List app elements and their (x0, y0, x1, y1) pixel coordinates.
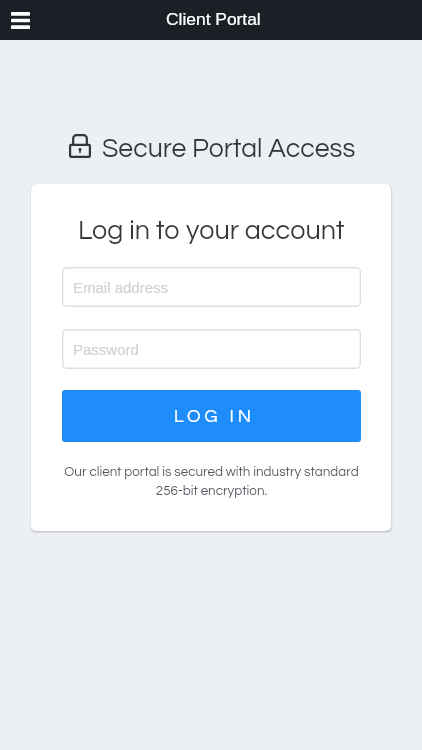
staticText: Client Portal (166, 9, 261, 28)
staticText: Secure Portal Access (102, 135, 356, 162)
staticText: Password (73, 341, 139, 358)
staticText: Email address (73, 279, 169, 296)
staticText: LOG IN (174, 407, 255, 426)
staticText: Log in to your account (78, 217, 345, 245)
button[interactable]: Email address (62, 267, 361, 307)
button[interactable]: Open navigation menu (0, 0, 40, 40)
button[interactable]: LOG IN (62, 390, 361, 442)
staticText: Our client portal is secured with indust… (62, 465, 361, 498)
button[interactable]: Password (62, 329, 361, 369)
